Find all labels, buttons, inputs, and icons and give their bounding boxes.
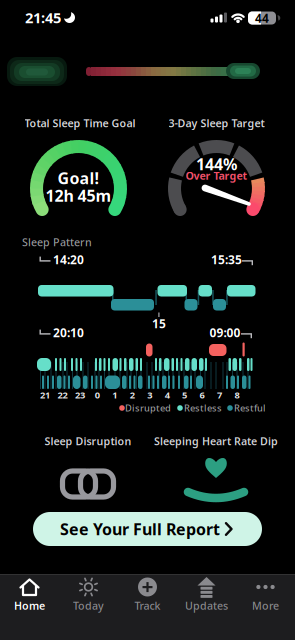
- button[interactable]: Sleep Disruption: [20, 430, 155, 506]
- staticText: More: [252, 598, 279, 613]
- button[interactable]: 3-Day Sleep Target: [141, 111, 291, 223]
- staticText: 4: [165, 389, 170, 401]
- staticText: Total Sleep Time Goal: [24, 116, 135, 130]
- staticText: 12h 45m: [45, 185, 111, 206]
- staticText: 3-Day Sleep Target: [168, 116, 264, 130]
- staticText: 44: [255, 10, 269, 26]
- staticText: 14:20: [53, 251, 84, 267]
- staticText: 22: [57, 389, 67, 401]
- staticText: Restless: [184, 402, 222, 414]
- staticText: Over Target: [185, 168, 247, 183]
- staticText: 23: [75, 389, 85, 401]
- staticText: 144%: [196, 153, 237, 175]
- staticText: 0: [95, 389, 100, 401]
- button[interactable]: Updates: [177, 574, 236, 640]
- button[interactable]: More: [236, 574, 295, 640]
- staticText: 7: [217, 389, 222, 401]
- button[interactable]: Sleeping Heart Rate Dip: [148, 430, 283, 506]
- staticText: 15: [152, 315, 166, 331]
- staticText: 3: [147, 389, 152, 401]
- staticText: Updates: [185, 598, 228, 613]
- staticText: Today: [73, 598, 104, 613]
- staticText: Sleep Disruption: [44, 434, 131, 448]
- staticText: 21: [40, 389, 50, 401]
- staticText: Home: [14, 598, 45, 613]
- staticText: 2: [130, 389, 135, 401]
- staticText: Track: [134, 598, 160, 613]
- button[interactable]: Today: [59, 574, 118, 640]
- staticText: 8: [234, 389, 239, 401]
- staticText: 21:45: [25, 8, 61, 27]
- staticText: 15:35: [211, 251, 242, 267]
- button[interactable]: Track: [118, 574, 177, 640]
- staticText: Disrupted: [125, 402, 171, 414]
- staticText: Sleeping Heart Rate Dip: [154, 434, 278, 448]
- button[interactable]: Home: [0, 574, 59, 640]
- staticText: Goal!: [57, 167, 99, 189]
- staticText: 1: [112, 389, 117, 401]
- staticText: 20:10: [53, 324, 84, 340]
- button[interactable]: See Your Full Report: [33, 512, 262, 546]
- staticText: 5: [182, 389, 187, 401]
- staticText: 09:00: [209, 324, 240, 340]
- button[interactable]: Total Sleep Time Goal: [3, 111, 153, 223]
- staticText: Sleep Pattern: [22, 235, 92, 249]
- staticText: See Your Full Report: [60, 518, 220, 540]
- staticText: 6: [199, 389, 204, 401]
- staticText: Restful: [234, 402, 266, 414]
